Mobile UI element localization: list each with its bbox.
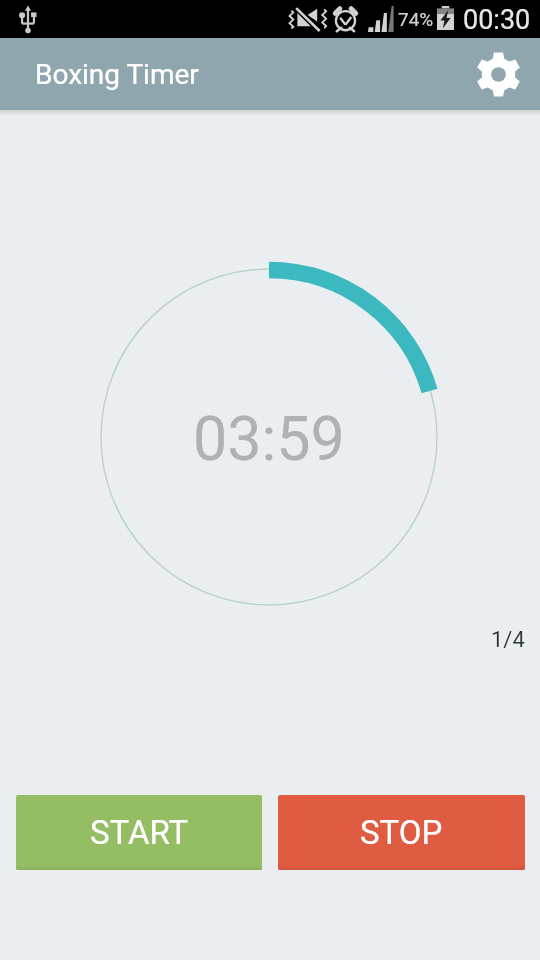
staticText: 00:30: [463, 4, 531, 36]
button[interactable]: START: [16, 795, 262, 870]
button[interactable]: STOP: [278, 795, 525, 870]
staticText: Boxing Timer: [35, 58, 199, 91]
staticText: START: [90, 813, 189, 852]
button[interactable]: Settings: [472, 48, 524, 100]
staticText: 03:59: [193, 403, 345, 474]
staticText: 1/4: [491, 627, 525, 653]
staticText: 74%: [398, 8, 434, 30]
staticText: STOP: [360, 813, 443, 852]
